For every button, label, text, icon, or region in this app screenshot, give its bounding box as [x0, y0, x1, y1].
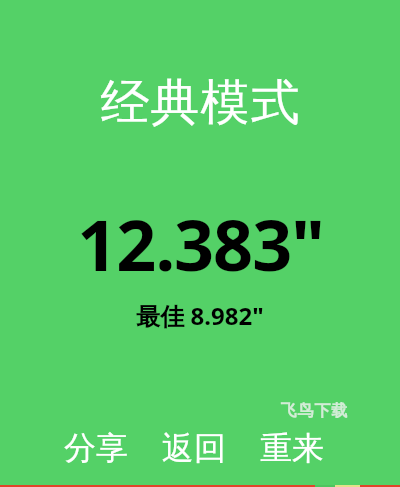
staticText: 最佳 8.982" — [136, 299, 264, 332]
staticText: 分享 — [64, 428, 128, 468]
staticText: 重来 — [260, 428, 324, 468]
button[interactable]: 重来 — [258, 424, 326, 472]
staticText: 飞鸟下载 — [280, 401, 348, 421]
staticText: 返回 — [162, 428, 226, 468]
staticText: 经典模式 — [100, 72, 300, 134]
button[interactable]: 经典模式 — [0, 72, 400, 134]
staticText: 12.383" — [77, 196, 324, 291]
button[interactable]: 分享 — [62, 424, 130, 472]
button[interactable]: 返回 — [160, 424, 228, 472]
